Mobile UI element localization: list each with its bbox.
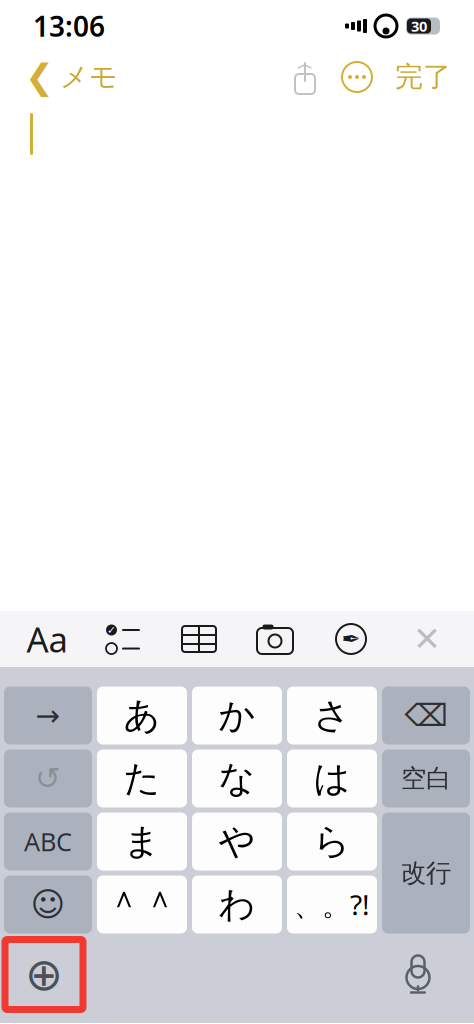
staticText: な [218, 756, 255, 801]
button[interactable]: ↺ [4, 749, 92, 807]
staticText: ❮ [25, 57, 54, 97]
staticText: ⌫ [404, 698, 447, 733]
button[interactable]: その他 [331, 54, 383, 100]
staticText: Aa [26, 616, 67, 662]
button[interactable]: ⌫ [382, 686, 470, 744]
staticText: 空白 [401, 763, 451, 794]
staticText: 30 [411, 16, 427, 36]
staticText: 改行 [401, 857, 451, 888]
button[interactable]: 空白 [382, 749, 470, 807]
staticText: わ [218, 882, 255, 927]
button[interactable]: ABC [4, 812, 92, 870]
staticText: 完了 [395, 60, 451, 94]
button[interactable]: た [97, 749, 187, 807]
button[interactable]: 音声入力 [390, 946, 446, 1002]
staticText: ら [313, 819, 350, 864]
staticText: メモ [60, 60, 118, 94]
staticText: か [218, 693, 255, 738]
button[interactable]: チェックリスト [95, 613, 151, 665]
staticText: ↺ [35, 761, 61, 796]
button[interactable]: 閉じる [399, 613, 455, 665]
button[interactable]: 共有 [279, 54, 331, 100]
staticText: ☺ [30, 886, 65, 923]
staticText: 、。?! [294, 886, 370, 923]
button[interactable]: 、。?! [287, 875, 377, 933]
staticText: あ [123, 693, 160, 738]
staticText: さ [313, 693, 350, 738]
staticText: ABC [24, 825, 72, 858]
button[interactable]: は [287, 749, 377, 807]
staticText: ✕ [413, 620, 441, 658]
button[interactable]: ☺ [4, 875, 92, 933]
staticText: ✓ [107, 624, 116, 636]
staticText: → [35, 699, 60, 732]
button[interactable]: ＾＾ [97, 875, 187, 933]
button[interactable]: さ [287, 686, 377, 744]
staticText: ⊕ [25, 949, 63, 1000]
staticText: ✒ [341, 626, 360, 652]
staticText: は [313, 756, 350, 801]
button[interactable]: 表 [171, 613, 227, 665]
button[interactable]: → [4, 686, 92, 744]
button[interactable]: 完了 [383, 54, 463, 100]
staticText: ＾＾ [106, 882, 178, 927]
button[interactable]: か [192, 686, 282, 744]
staticText: 13:06 [33, 7, 105, 45]
button[interactable]: 改行 [382, 812, 470, 933]
staticText: ︿ [297, 54, 313, 74]
button[interactable]: や [192, 812, 282, 870]
button[interactable]: わ [192, 875, 282, 933]
button[interactable]: ま [97, 812, 187, 870]
button[interactable]: カメラ [247, 613, 303, 665]
button[interactable]: ❮ [11, 54, 132, 100]
button[interactable]: 次のキーボード [12, 946, 76, 1002]
staticText: ま [123, 819, 160, 864]
button[interactable]: な [192, 749, 282, 807]
button[interactable]: あ [97, 686, 187, 744]
button[interactable]: 書式 [19, 613, 75, 665]
button[interactable]: ら [287, 812, 377, 870]
staticText: た [123, 756, 160, 801]
staticText: や [218, 819, 255, 864]
button[interactable]: マークアップ [323, 613, 379, 665]
